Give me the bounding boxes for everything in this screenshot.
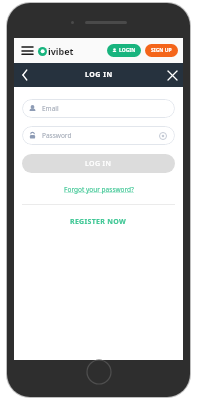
button[interactable]: Close: [161, 64, 183, 86]
button[interactable]: Menu: [19, 43, 35, 59]
button[interactable]: LOG IN: [22, 154, 175, 173]
staticText: LOGIN: [119, 47, 136, 54]
button[interactable]: SIGN UP: [145, 44, 178, 57]
staticText: LOG IN: [85, 70, 113, 80]
button[interactable]: Back: [14, 64, 36, 86]
staticText: Email: [42, 104, 59, 113]
staticText: Password: [42, 131, 72, 140]
button[interactable]: Show password: [157, 130, 168, 141]
button[interactable]: ivibet: [38, 45, 74, 57]
button[interactable]: Email: [22, 99, 175, 118]
staticText: REGISTER NOW: [70, 217, 127, 227]
button[interactable]: LOGIN: [107, 44, 141, 57]
button[interactable]: Forgot your password?: [60, 183, 138, 196]
button[interactable]: Password: [22, 126, 175, 145]
button[interactable]: REGISTER NOW: [64, 215, 133, 229]
staticText: ivibet: [48, 45, 74, 57]
staticText: LOG IN: [85, 159, 112, 169]
staticText: Forgot your password?: [64, 185, 134, 194]
staticText: SIGN UP: [151, 47, 172, 54]
